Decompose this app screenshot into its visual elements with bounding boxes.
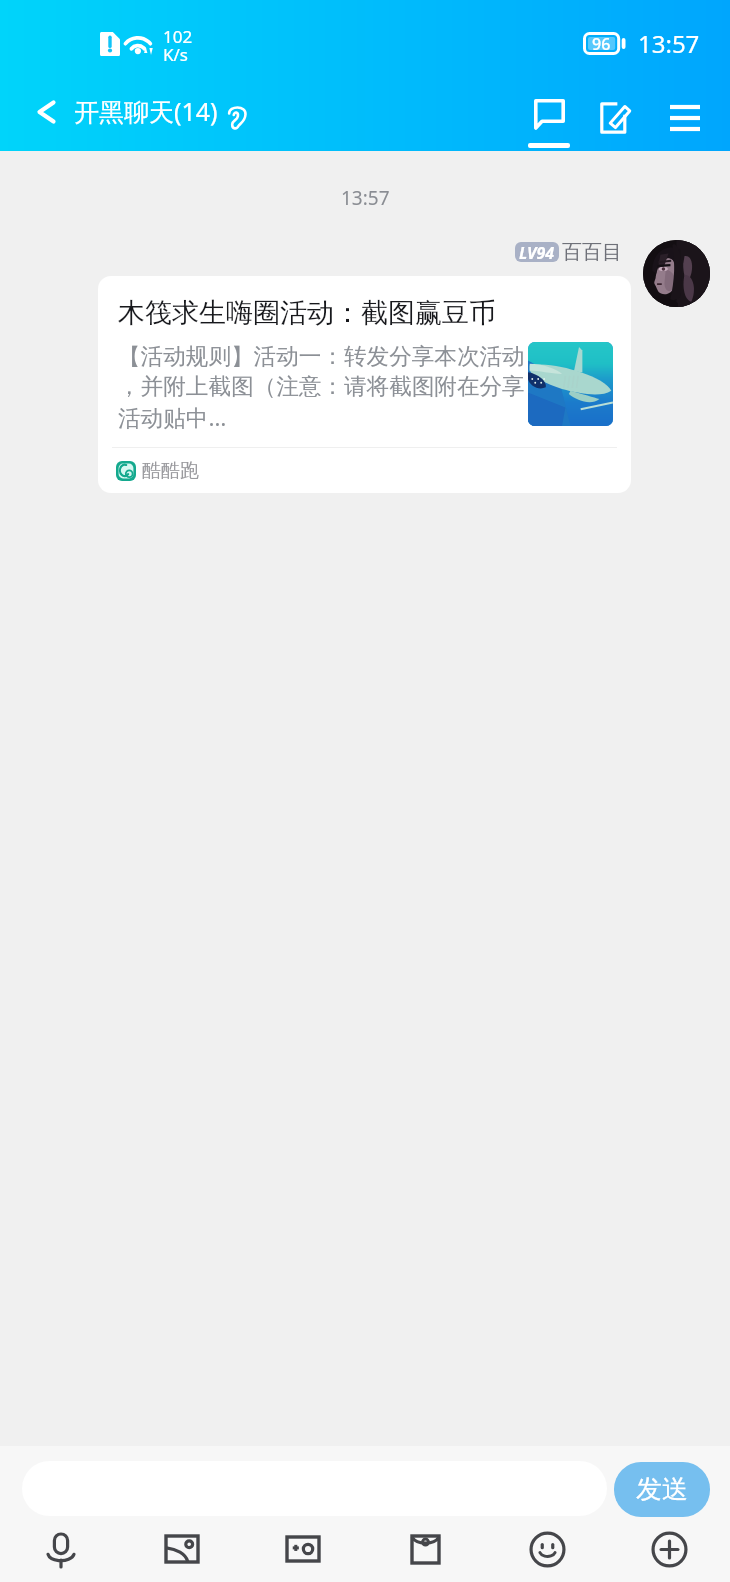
button[interactable]: 木筏求生嗨圈活动：截图赢豆币 xyxy=(98,276,631,493)
staticText: 百百目 xyxy=(562,240,622,265)
staticText: K/s xyxy=(163,43,188,66)
staticText: 酷酷跑 xyxy=(142,459,199,483)
staticText: 发送 xyxy=(636,1473,688,1506)
staticText: 102 xyxy=(163,25,193,48)
staticText: 木筏求生嗨圈活动：截图赢豆币 xyxy=(118,296,496,330)
button[interactable]: Menu xyxy=(653,84,717,151)
button[interactable]: 发送 xyxy=(614,1462,710,1517)
button[interactable]: Sticker xyxy=(242,1516,364,1582)
button[interactable]: Voice message xyxy=(0,1516,121,1582)
staticText: 【活动规则】活动一：转发分享本次活动 ，并附上截图（注意：请将截图附在分享 活动… xyxy=(118,342,525,433)
button[interactable]: Back xyxy=(18,84,74,140)
staticText: 13:57 xyxy=(638,27,700,60)
staticText: 96 xyxy=(592,33,611,55)
button[interactable]: Photo xyxy=(121,1516,242,1582)
button[interactable]: Compose xyxy=(583,84,647,151)
button[interactable]: Messages xyxy=(514,84,584,151)
staticText: LV94 xyxy=(519,242,555,262)
button[interactable]: Emoji xyxy=(486,1516,608,1582)
staticText: 开黑聊天(14) xyxy=(74,94,218,128)
button[interactable]: More xyxy=(608,1516,730,1582)
button[interactable]: Avatar xyxy=(643,240,710,307)
staticText: 13:57 xyxy=(341,185,390,211)
button[interactable]: Red packet xyxy=(364,1516,486,1582)
